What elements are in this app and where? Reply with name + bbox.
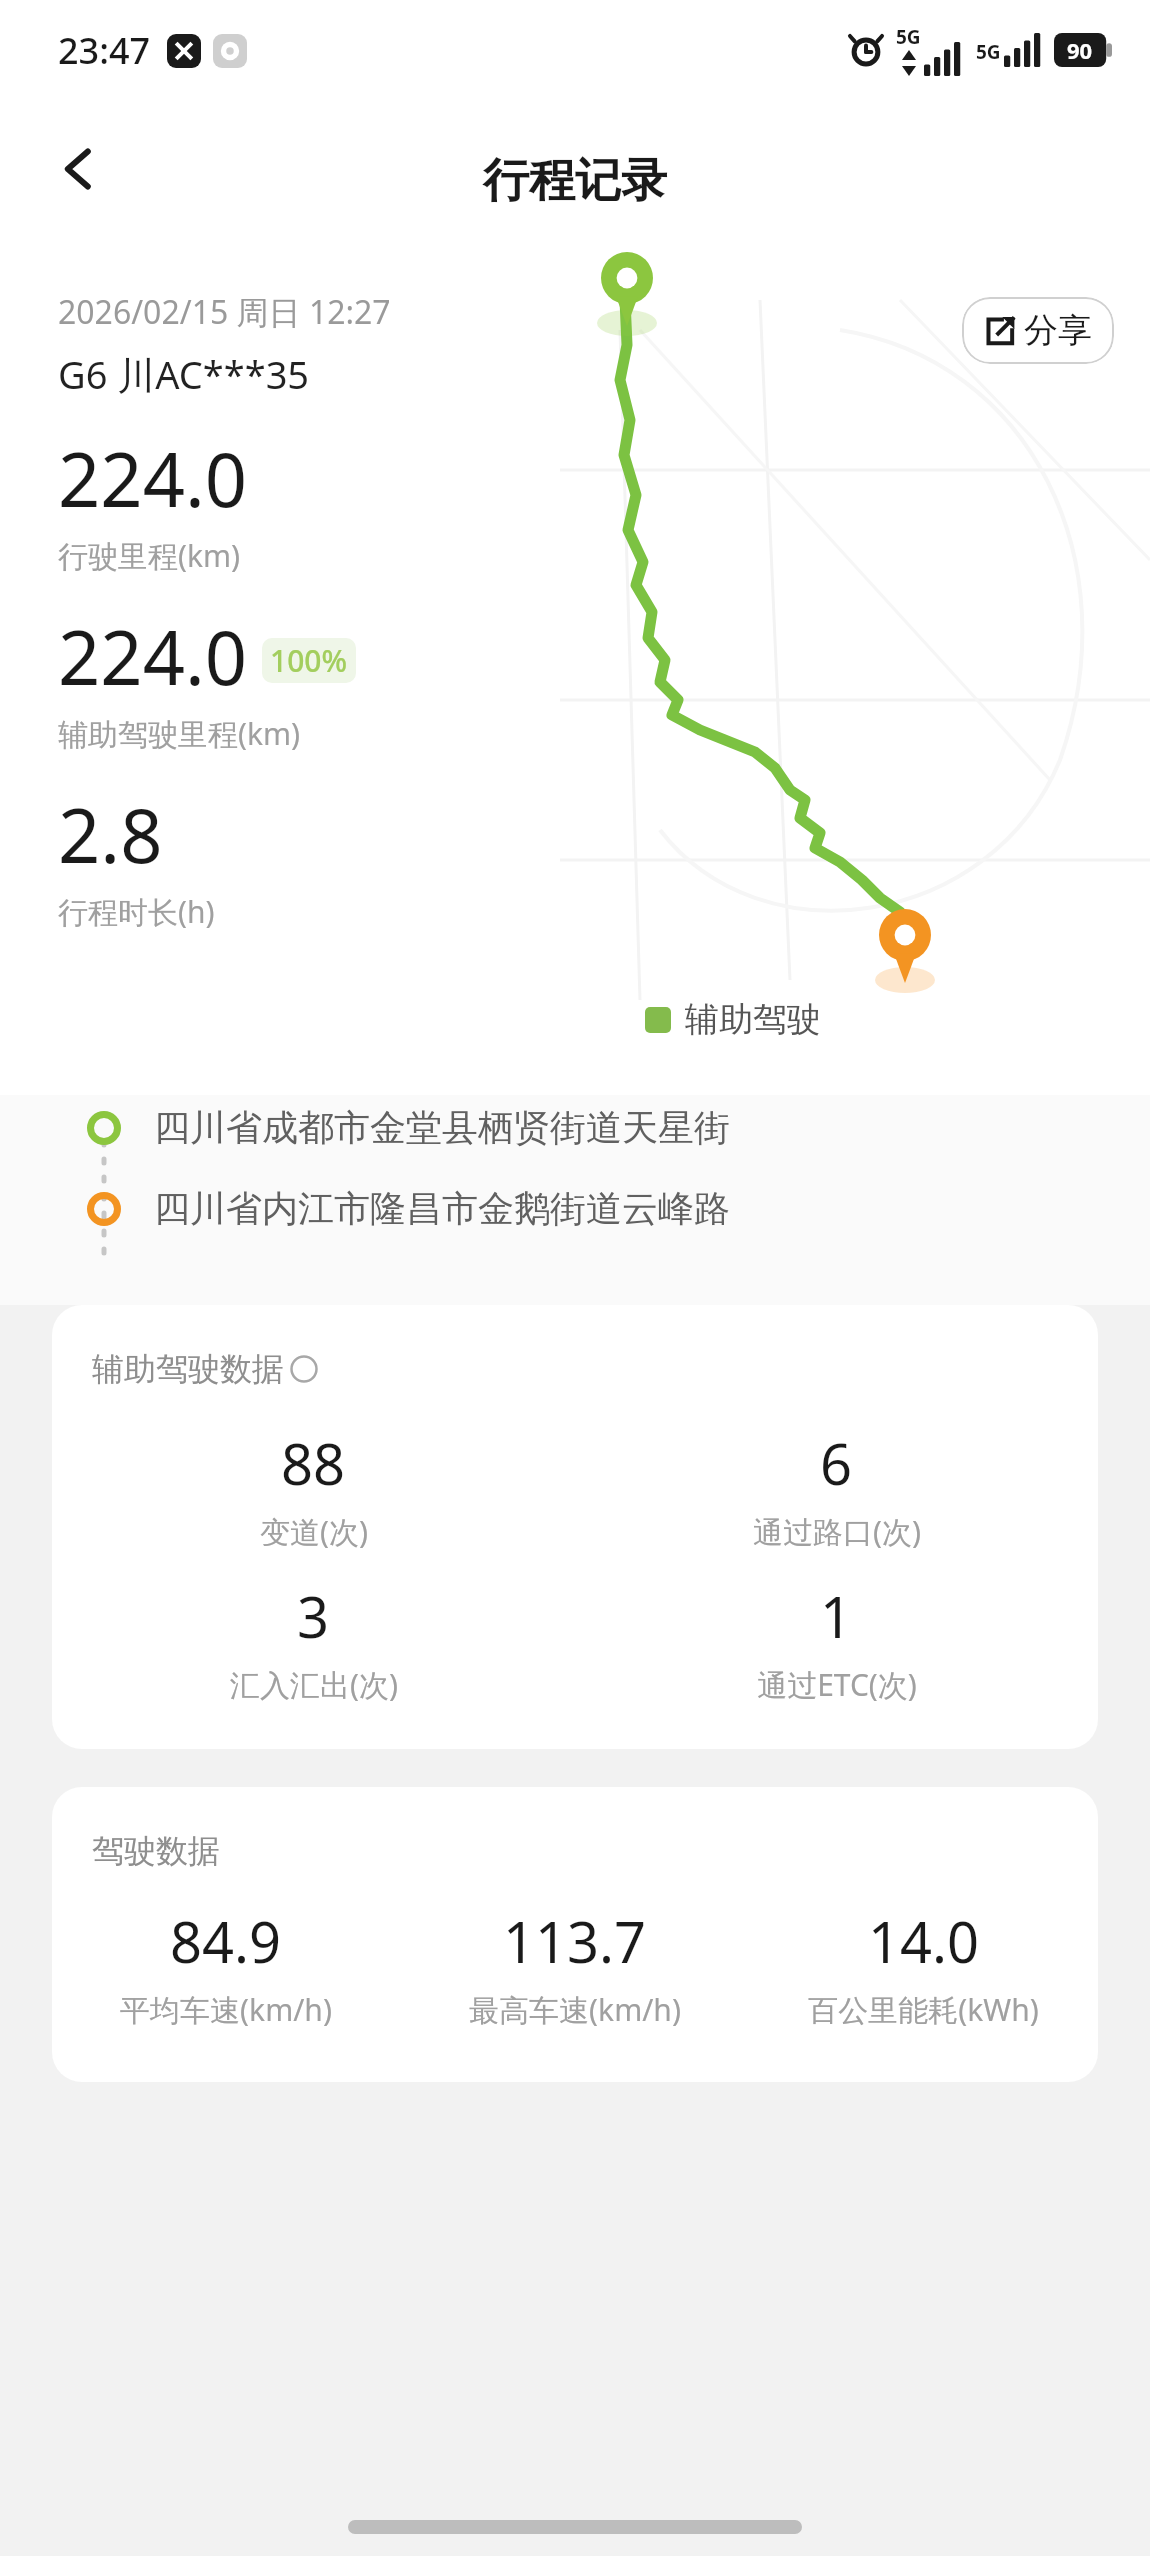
staticText: 辅助驾驶数据: [92, 1349, 284, 1389]
staticText: 3: [297, 1578, 330, 1654]
staticText: 14.0: [868, 1903, 980, 1979]
staticText: 四川省成都市金堂县栖贤街道天星街: [154, 1105, 730, 1150]
staticText: 113.7: [503, 1903, 647, 1979]
staticText: 最高车速(km/h): [469, 1989, 681, 2030]
staticText: 1: [820, 1578, 853, 1654]
staticText: 5G: [976, 39, 1001, 65]
staticText: 23:47: [58, 26, 151, 75]
staticText: 88: [281, 1425, 346, 1501]
staticText: 变道(次): [260, 1511, 368, 1552]
button[interactable]: 驾驶数据: [52, 1787, 1098, 2082]
staticText: 通过ETC(次): [757, 1664, 917, 1705]
staticText: 驾驶数据: [92, 1831, 220, 1871]
staticText: 四川省内江市隆昌市金鹅街道云峰路: [154, 1186, 730, 1231]
staticText: 汇入汇出(次): [230, 1664, 398, 1705]
staticText: 5G: [896, 24, 921, 50]
staticText: 平均车速(km/h): [120, 1989, 332, 2030]
staticText: 224.0: [58, 606, 248, 707]
staticText: 2.8: [58, 784, 163, 885]
staticText: 90: [1067, 35, 1093, 65]
staticText: 行程时长(h): [58, 891, 215, 932]
button[interactable]: 四川省成都市金堂县栖贤街道天星街: [0, 1105, 1150, 1150]
staticText: 6: [820, 1425, 853, 1501]
staticText: 84.9: [170, 1903, 282, 1979]
button[interactable]: 辅助驾驶数据: [52, 1305, 1098, 1749]
staticText: G6 川AC***35: [58, 348, 310, 400]
staticText: 分享: [1024, 309, 1092, 352]
staticText: 辅助驾驶: [685, 998, 821, 1041]
staticText: 行程记录: [483, 152, 667, 210]
staticText: 行驶里程(km): [58, 535, 241, 576]
button[interactable]: 分享: [962, 297, 1114, 364]
staticText: 辅助驾驶里程(km): [58, 713, 301, 754]
button[interactable]: 四川省内江市隆昌市金鹅街道云峰路: [0, 1186, 1150, 1231]
staticText: 224.0: [58, 428, 248, 529]
staticText: 百公里能耗(kWh): [808, 1989, 1039, 2030]
staticText: 100%: [270, 640, 348, 681]
staticText: 通过路口(次): [753, 1511, 921, 1552]
staticText: 2026/02/15 周日 12:27: [58, 290, 391, 334]
button[interactable]: Back: [40, 130, 118, 208]
